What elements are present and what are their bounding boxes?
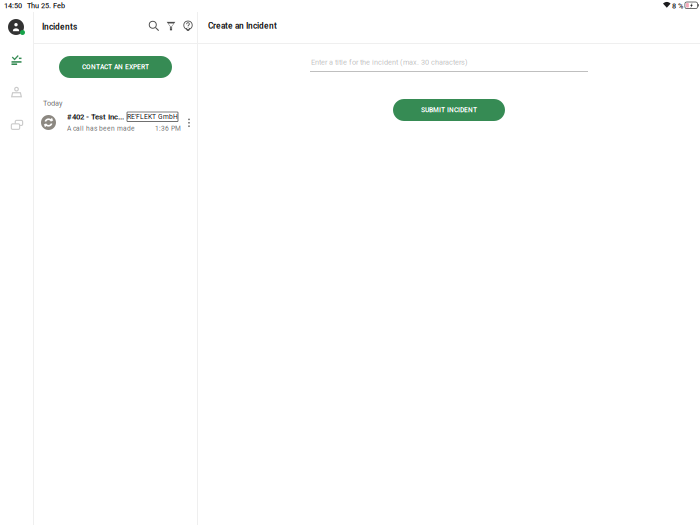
- staticText: SUBMIT INCIDENT: [421, 106, 477, 114]
- button[interactable]: #402 - Test Inc...: [34, 110, 197, 136]
- button[interactable]: Incidents: [3, 49, 30, 71]
- button[interactable]: Profile: [4, 16, 28, 38]
- button[interactable]: Sessions: [2, 111, 29, 133]
- staticText: #402 - Test Inc...: [67, 112, 124, 121]
- button[interactable]: Help: [179, 18, 197, 34]
- button[interactable]: Search: [145, 18, 163, 34]
- button[interactable]: SUBMIT INCIDENT: [393, 99, 505, 121]
- staticText: 8 %: [672, 2, 683, 10]
- staticText: Create an Incident: [208, 21, 277, 31]
- staticText: A call has been made: [67, 124, 135, 132]
- button[interactable]: Experts: [3, 81, 30, 103]
- staticText: Today: [43, 99, 62, 108]
- staticText: Enter a title for the incident (max. 30 …: [311, 58, 468, 67]
- button[interactable]: CONTACT AN EXPERT: [59, 56, 172, 78]
- staticText: Incidents: [42, 22, 77, 32]
- button[interactable]: Filter: [162, 18, 180, 34]
- staticText: CONTACT AN EXPERT: [82, 63, 149, 71]
- staticText: 1:36 PM: [155, 124, 181, 132]
- staticText: 14:50: [4, 1, 22, 10]
- staticText: Thu 25. Feb: [27, 1, 65, 10]
- staticText: RE'FLEKT GmbH: [127, 113, 178, 121]
